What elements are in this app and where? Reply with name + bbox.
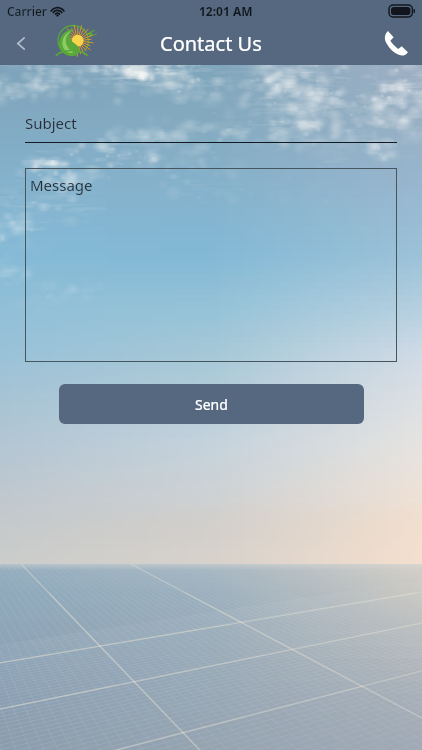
staticText: Send (195, 395, 228, 414)
staticText: Contact Us (160, 30, 262, 57)
button[interactable]: Send (59, 384, 364, 424)
staticText: Message (30, 175, 93, 195)
staticText: Carrier (7, 3, 47, 19)
button[interactable]: Call (368, 21, 422, 65)
staticText: 12:01 AM (199, 3, 253, 19)
staticText: Subject (25, 113, 77, 133)
button[interactable]: Back (0, 21, 42, 65)
